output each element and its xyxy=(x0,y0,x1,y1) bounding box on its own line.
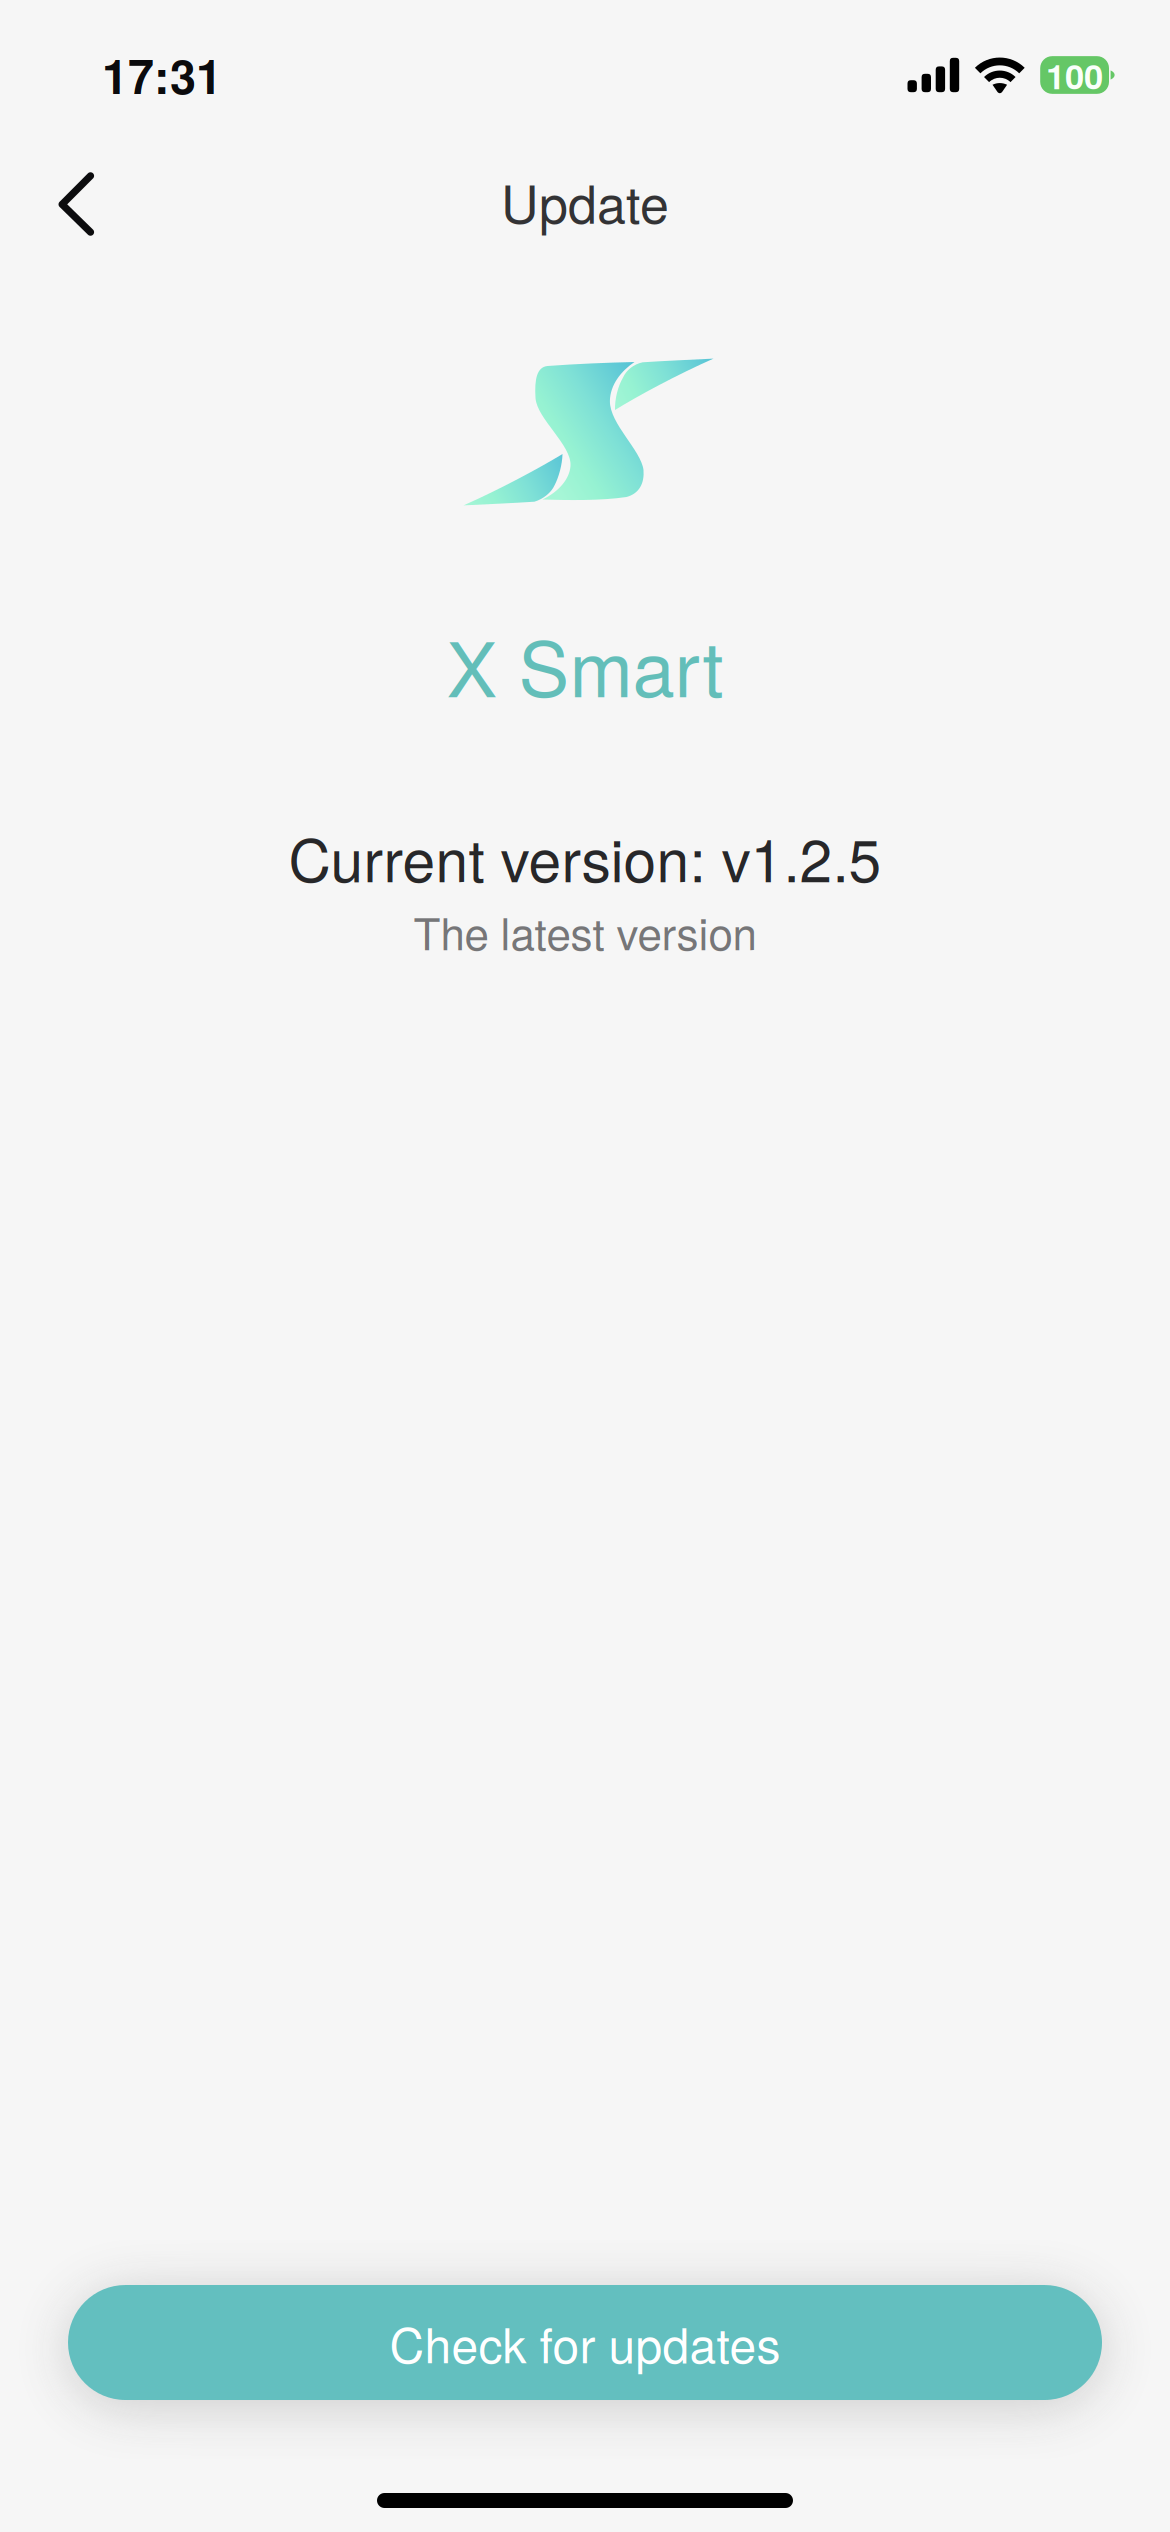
staticText: Current version: v1.2.5 xyxy=(288,815,881,899)
staticText: X Smart xyxy=(446,610,723,719)
staticText: 17:31 xyxy=(102,42,222,108)
button[interactable]: Check for updates xyxy=(68,2285,1102,2400)
button[interactable]: Back xyxy=(0,146,134,256)
staticText: 100 xyxy=(1046,50,1103,100)
staticText: Check for updates xyxy=(389,2308,780,2377)
staticText: The latest version xyxy=(413,900,756,963)
staticText: Update xyxy=(501,164,669,238)
